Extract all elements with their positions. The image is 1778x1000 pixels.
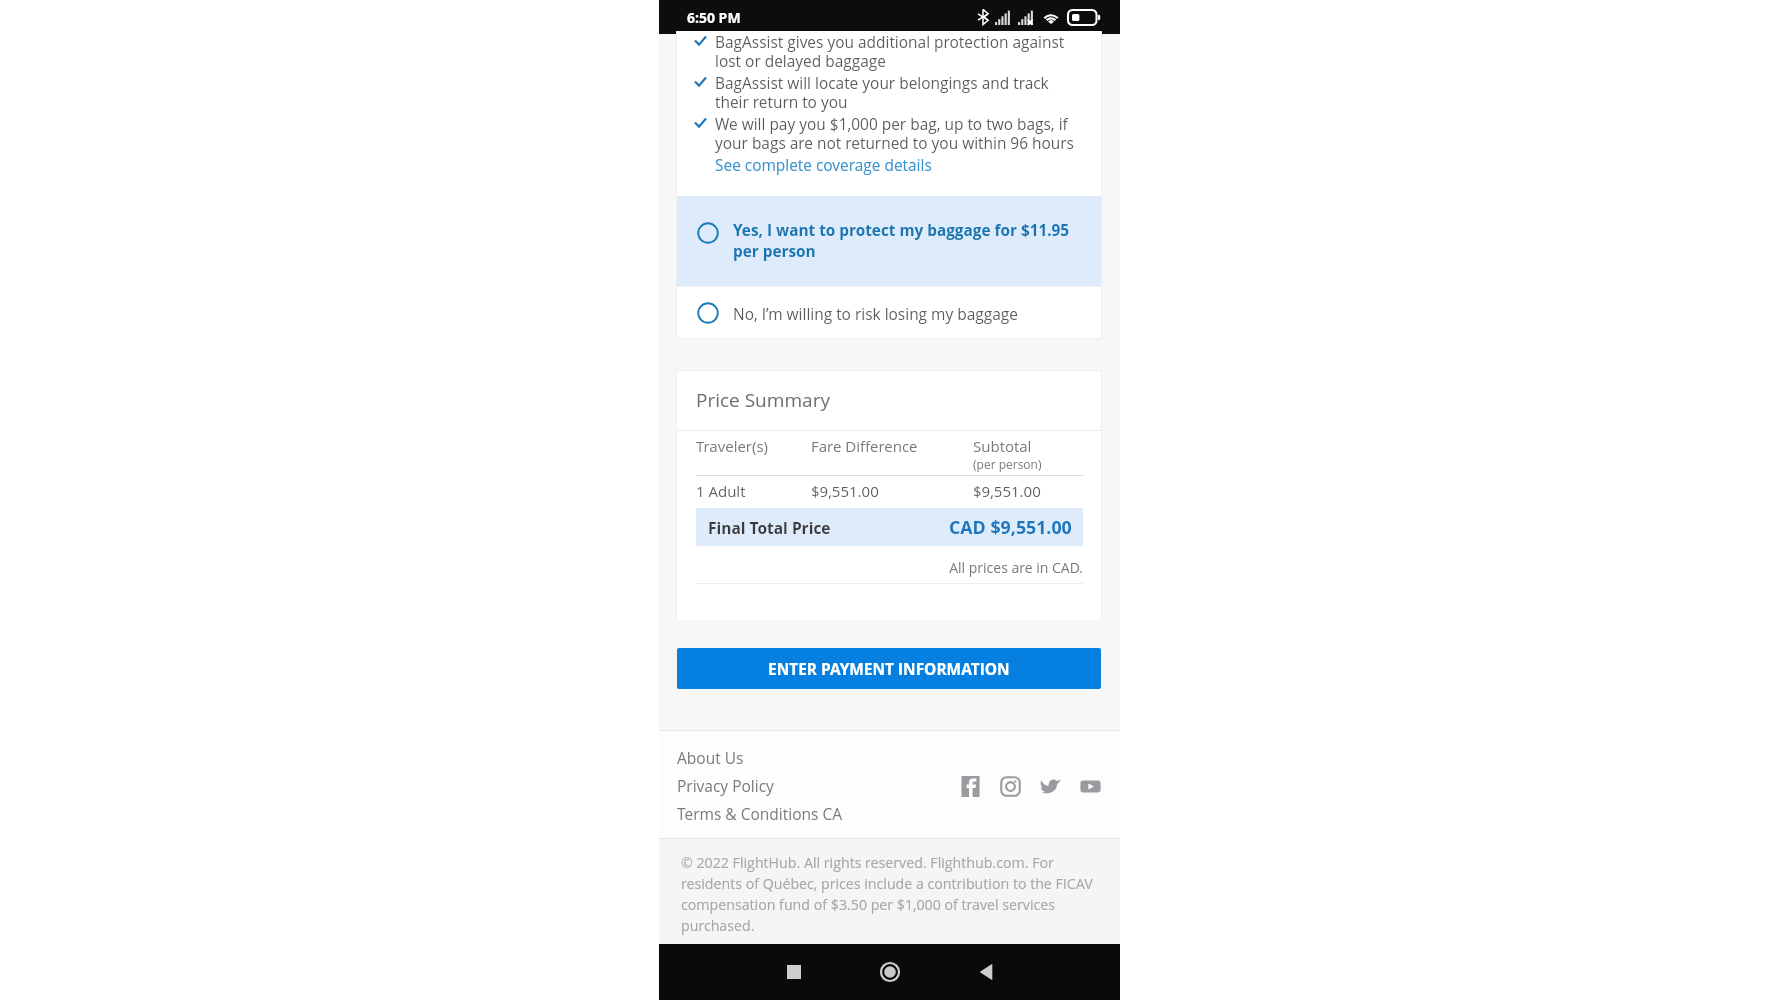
- staticText: Final Total Price: [708, 517, 949, 538]
- staticText: 1 Adult: [696, 481, 811, 501]
- button[interactable]: ENTER PAYMENT INFORMATION: [677, 648, 1101, 689]
- staticText: ENTER PAYMENT INFORMATION: [768, 658, 1010, 679]
- staticText: (per person): [973, 456, 1042, 472]
- staticText: Privacy Policy: [677, 775, 774, 796]
- staticText: $9,551.00: [811, 481, 973, 501]
- button[interactable]: YouTube: [1077, 773, 1103, 799]
- staticText: © 2022 FlightHub. All rights reserved. F…: [681, 853, 1110, 936]
- button[interactable]: About Us: [677, 747, 957, 768]
- button[interactable]: Privacy Policy: [677, 775, 957, 796]
- staticText: Fare Difference: [811, 436, 973, 456]
- staticText: Terms & Conditions CA: [677, 803, 843, 824]
- button[interactable]: Yes, I want to protect my baggage for $1…: [677, 196, 1101, 286]
- staticText: About Us: [677, 747, 744, 768]
- staticText: Traveler(s): [696, 436, 811, 456]
- button[interactable]: Facebook: [957, 773, 983, 799]
- staticText: See complete coverage details: [715, 154, 932, 175]
- button[interactable]: Back: [952, 944, 1020, 1000]
- button[interactable]: See complete coverage details: [694, 153, 1085, 175]
- staticText: No, I’m willing to risk losing my baggag…: [733, 303, 1018, 324]
- button[interactable]: Recent apps: [760, 944, 828, 1000]
- staticText: We will pay you $1,000 per bag, up to tw…: [715, 113, 1085, 153]
- staticText: $9,551.00: [973, 481, 1041, 501]
- button[interactable]: Twitter: [1037, 773, 1063, 799]
- staticText: 6:50 PM: [687, 8, 741, 27]
- staticText: BagAssist will locate your belongings an…: [715, 72, 1085, 112]
- button[interactable]: Instagram: [997, 773, 1023, 799]
- button[interactable]: No, I’m willing to risk losing my baggag…: [677, 287, 1101, 338]
- staticText: CAD $9,551.00: [949, 515, 1072, 539]
- button[interactable]: Terms & Conditions CA: [677, 803, 957, 824]
- button[interactable]: Home: [856, 944, 924, 1000]
- staticText: BagAssist gives you additional protectio…: [715, 31, 1085, 71]
- staticText: Price Summary: [696, 387, 830, 413]
- staticText: All prices are in CAD.: [696, 558, 1083, 577]
- staticText: Yes, I want to protect my baggage for $1…: [733, 220, 1085, 261]
- staticText: Subtotal: [973, 436, 1032, 456]
